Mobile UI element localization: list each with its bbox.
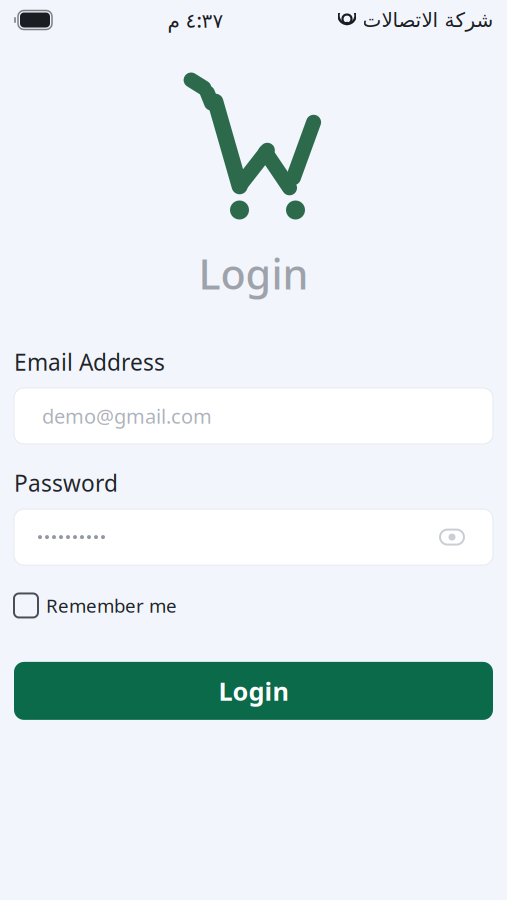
button[interactable]: Show password [435, 520, 469, 554]
staticText: Login [198, 246, 308, 301]
staticText: ٤:٣٧ م [167, 7, 223, 33]
staticText: Email Address [14, 347, 165, 377]
staticText: شركة الاتصالات [362, 9, 493, 31]
button[interactable]: Login [14, 662, 493, 720]
staticText: Remember me [46, 593, 177, 618]
button[interactable]: Remember me [0, 587, 507, 624]
staticText: Password [14, 468, 118, 498]
staticText: demo@gmail.com [42, 403, 212, 429]
staticText: Login [218, 674, 288, 708]
